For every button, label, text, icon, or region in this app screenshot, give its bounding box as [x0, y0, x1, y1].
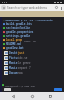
staticText: README.md	[6, 42, 21, 46]
staticText: now	[18, 71, 23, 75]
button[interactable]: Pictures	[0, 55, 64, 60]
staticText: build.gradle.kts	[6, 22, 32, 26]
staticText: settings.gradle	[6, 34, 31, 38]
staticText: just	[18, 51, 25, 55]
staticText: Pictures	[9, 56, 18, 60]
staticText: Desktop	[9, 51, 18, 55]
button[interactable]: gradle.properties	[0, 30, 64, 34]
button[interactable]: settings.gradle	[0, 34, 64, 38]
button[interactable]: Reload	[54, 5, 59, 10]
button[interactable]: Home	[28, 92, 37, 100]
staticText: Search or type web address	[7, 6, 48, 10]
staticText: report 7	[18, 66, 31, 70]
button[interactable]: Send	[54, 88, 62, 91]
button[interactable]: More options	[59, 6, 63, 10]
staticText: src/main/kotlin	[6, 26, 31, 30]
button[interactable]: README.md	[0, 42, 64, 46]
staticText: argv: on	[24, 39, 37, 42]
button[interactable]: Account	[1, 5, 6, 10]
button[interactable]: Recents	[46, 92, 55, 100]
staticText: user@host:~$ npm run	[5, 84, 36, 87]
button[interactable]: Desktop	[0, 50, 64, 55]
button[interactable]: user@host:~$ npm run	[0, 83, 64, 87]
staticText: Documents	[9, 71, 18, 75]
staticText: idx.se	[18, 56, 28, 60]
staticText: local.prop	[6, 38, 23, 42]
staticText: le gener	[18, 61, 31, 65]
button[interactable]: gradlew.bat	[0, 46, 64, 50]
button[interactable]: Documents	[0, 70, 64, 75]
button[interactable]: local.prop	[0, 38, 64, 42]
button[interactable]: Music	[0, 65, 64, 70]
button[interactable]: Movies	[0, 60, 64, 65]
staticText: gradle.properties	[6, 30, 34, 34]
staticText: Music	[9, 66, 18, 70]
button[interactable]: src/main/kotlin	[0, 26, 64, 30]
button[interactable]: Back	[9, 92, 18, 100]
staticText: Movies	[9, 61, 18, 65]
staticText: gradlew.bat	[6, 46, 24, 50]
button[interactable]: build.gradle.kts	[0, 22, 64, 26]
staticText: ~/downloads $ ls -la --color=auto	[3, 18, 53, 21]
button[interactable]: Command input	[4, 88, 11, 91]
